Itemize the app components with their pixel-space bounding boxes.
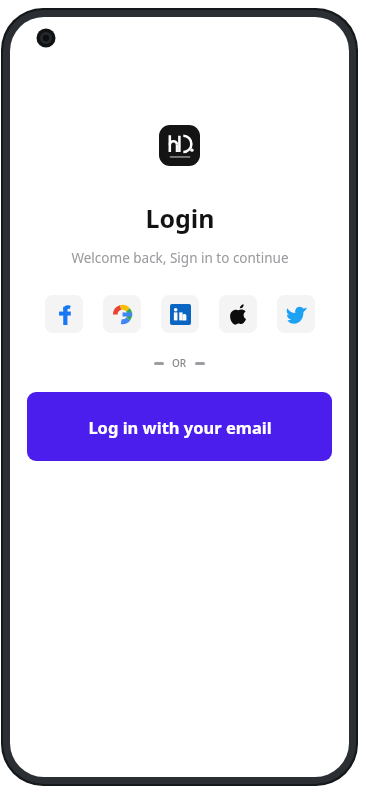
button[interactable]: Sign in with LinkedIn <box>161 295 199 333</box>
button[interactable]: Log in with your email <box>27 392 332 461</box>
other: App logo <box>159 125 200 166</box>
staticText: Log in with your email <box>88 416 272 438</box>
button[interactable]: Sign in with Google <box>103 295 141 333</box>
staticText: Login <box>145 201 215 235</box>
staticText: Welcome back, Sign in to continue <box>71 249 289 267</box>
button[interactable]: Sign in with Facebook <box>45 295 83 333</box>
staticText: OR <box>172 356 187 370</box>
button[interactable]: Sign in with Apple <box>219 295 257 333</box>
button[interactable]: Sign in with Twitter <box>277 295 315 333</box>
